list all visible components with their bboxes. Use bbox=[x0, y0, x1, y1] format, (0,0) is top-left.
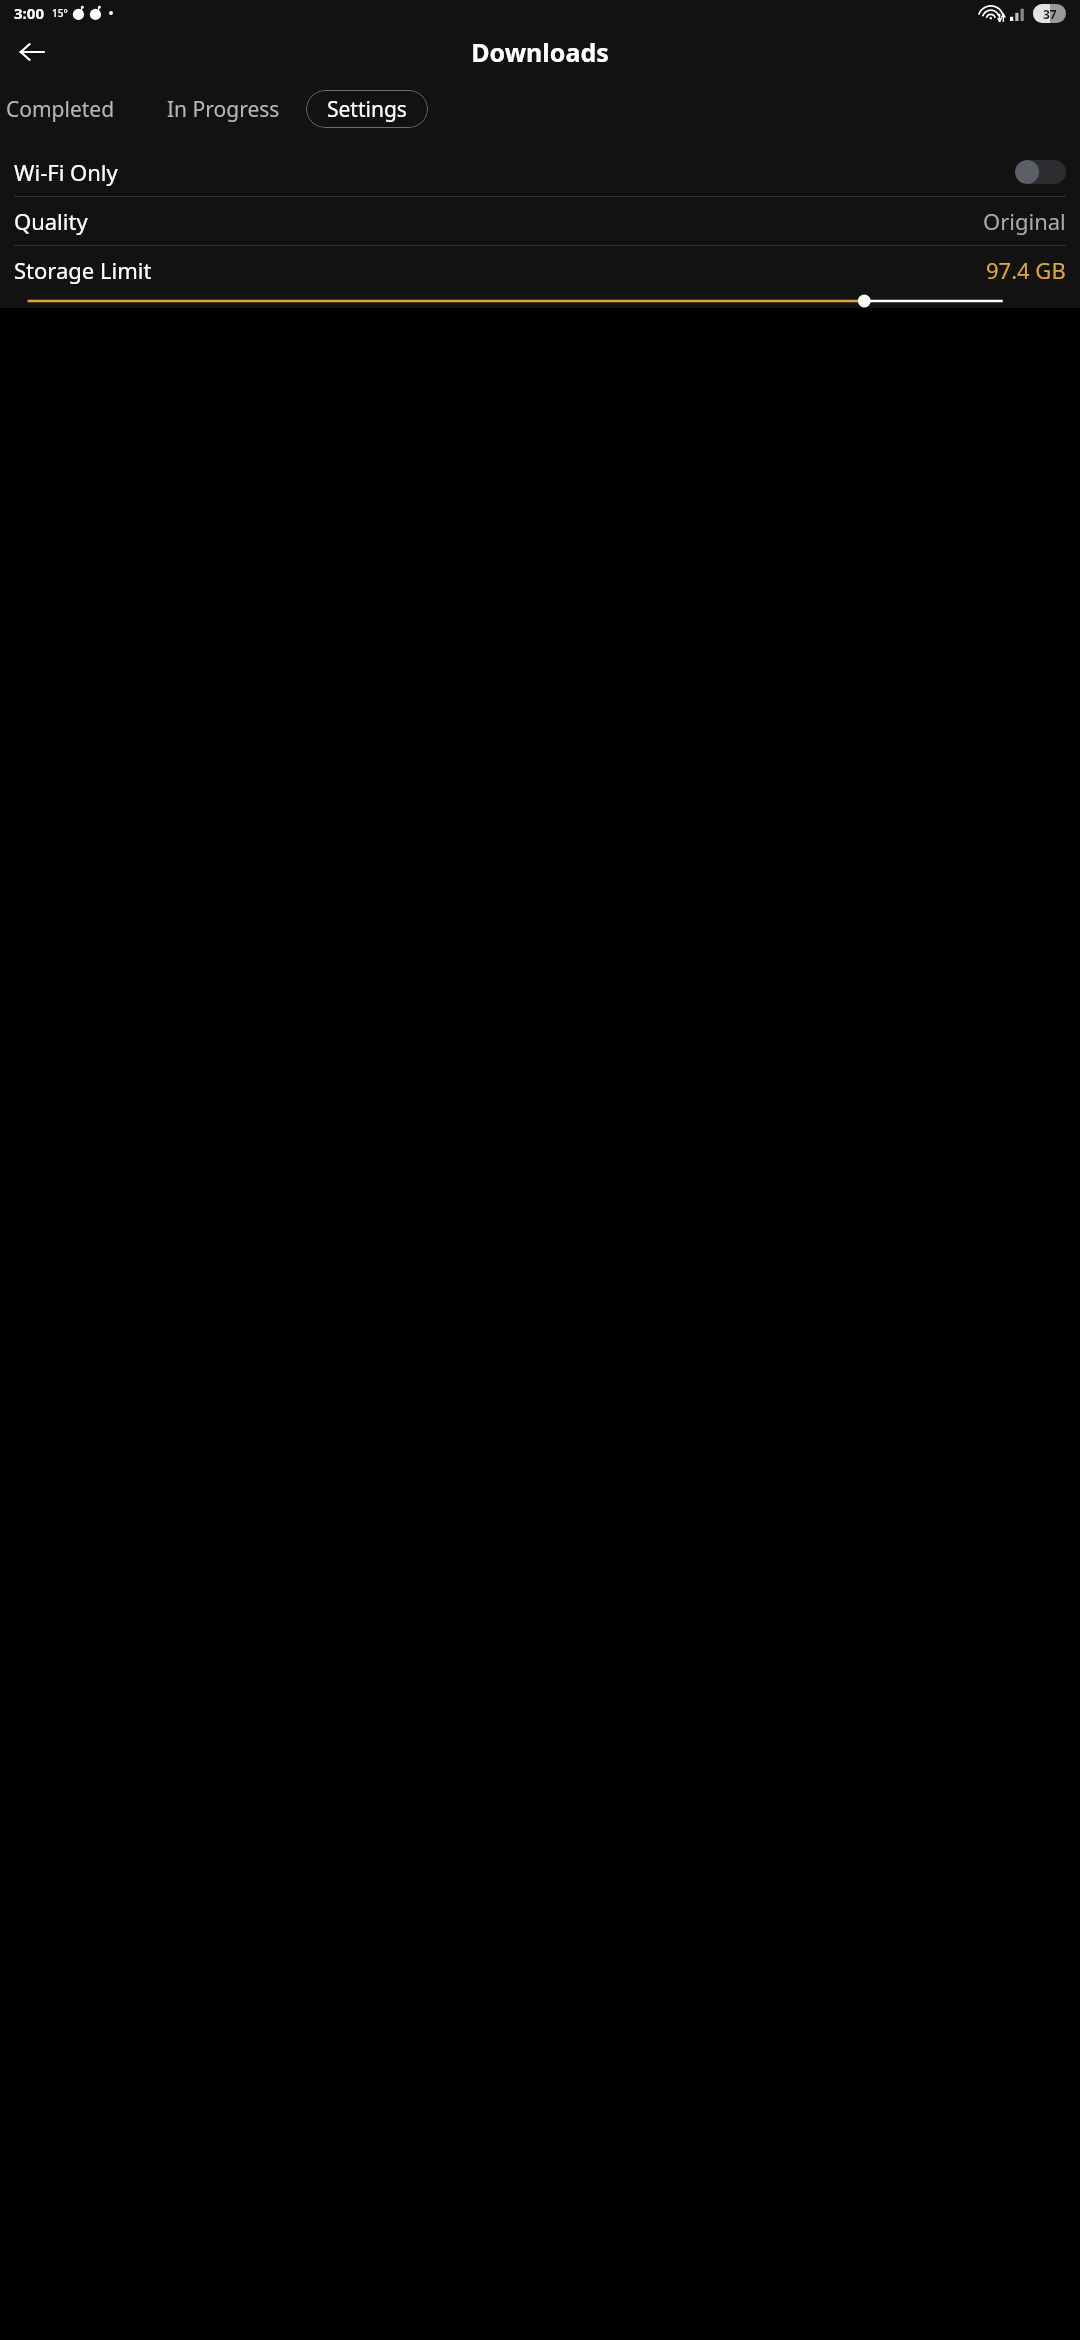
staticText: 97.4 GB bbox=[986, 255, 1066, 285]
staticText: Settings bbox=[327, 95, 407, 124]
button[interactable]: Back bbox=[8, 28, 56, 76]
staticText: In Progress bbox=[167, 95, 280, 124]
staticText: Original bbox=[983, 206, 1066, 236]
staticText: Storage Limit bbox=[14, 255, 986, 285]
button[interactable]: Storage limit slider bbox=[0, 294, 1080, 308]
button[interactable]: Wi-Fi Only bbox=[0, 148, 1080, 196]
staticText: Downloads bbox=[471, 35, 609, 69]
button[interactable]: Quality bbox=[0, 197, 1080, 245]
staticText: Wi-Fi Only bbox=[14, 157, 1015, 187]
button[interactable]: Completed bbox=[0, 87, 127, 132]
staticText: 37 bbox=[1043, 6, 1057, 22]
staticText: Quality bbox=[14, 206, 983, 236]
staticText: Completed bbox=[6, 95, 115, 124]
button[interactable]: Settings bbox=[306, 90, 428, 128]
button[interactable]: In Progress bbox=[155, 87, 292, 132]
staticText: 3:00 bbox=[14, 3, 44, 23]
button[interactable]: Storage Limit bbox=[0, 246, 1080, 308]
staticText: 15° bbox=[52, 6, 68, 20]
button[interactable]: Wi-Fi Only toggle bbox=[1015, 160, 1066, 184]
